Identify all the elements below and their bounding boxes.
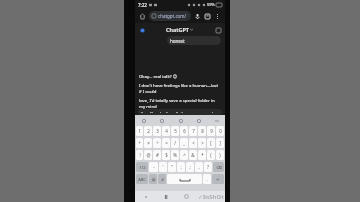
button[interactable]: # <box>158 174 166 184</box>
button[interactable]: ABC <box>136 174 148 184</box>
button[interactable]: 3 <box>153 126 161 136</box>
staticText: ! <box>139 152 141 158</box>
staticText: : <box>180 164 182 170</box>
button[interactable]: > <box>198 138 206 148</box>
staticText: 3 <box>156 128 159 134</box>
button[interactable]: Tabs <box>203 12 212 21</box>
staticText: ] <box>219 140 221 146</box>
staticText: < <box>192 140 195 146</box>
button[interactable]: 9 <box>207 126 215 136</box>
staticText: 5 <box>174 128 177 134</box>
staticText: _ <box>183 140 185 146</box>
button[interactable]: New chat <box>214 26 222 34</box>
staticText: ↵ <box>216 177 220 182</box>
button[interactable]: ^ <box>180 150 188 160</box>
button[interactable]: Keyboard tool 3 <box>177 117 184 124</box>
button[interactable]: 8 <box>198 126 206 136</box>
button[interactable]: - <box>149 162 158 172</box>
staticText: 😀 <box>151 177 156 182</box>
button[interactable]: : <box>177 162 185 172</box>
staticText: ? <box>207 164 209 170</box>
staticText: * <box>201 152 204 158</box>
button[interactable]: ) <box>216 150 224 160</box>
button[interactable]: ÷ <box>153 138 161 148</box>
button[interactable]: 2 <box>144 126 152 136</box>
button[interactable]: Keyboard tool 2 <box>158 117 165 124</box>
staticText: 59% <box>207 2 215 7</box>
staticText: @ <box>146 152 151 158</box>
staticText: % <box>173 152 177 158</box>
button[interactable]: ChatGPT <box>164 26 195 33</box>
staticText: 2 <box>147 128 150 134</box>
button[interactable]: 😀 <box>149 174 157 184</box>
staticText: > <box>201 140 204 146</box>
staticText: 1 <box>138 128 141 134</box>
button[interactable]: Expand <box>213 117 220 124</box>
button[interactable]: Keyboard tool 1 <box>140 117 147 124</box>
button[interactable]: chatgpt.com/c/6820 <box>149 11 191 21</box>
button[interactable]: Assistant <box>135 191 156 202</box>
button[interactable]: 1/2 <box>136 162 148 172</box>
button[interactable]: ; <box>186 162 194 172</box>
staticText: , <box>198 164 200 170</box>
staticText: honest <box>170 38 185 44</box>
button[interactable]: / <box>171 138 179 148</box>
button[interactable]: < <box>189 138 197 148</box>
staticText: ' <box>162 164 164 170</box>
button[interactable]: 7 <box>189 126 197 136</box>
button[interactable]: ( <box>207 150 215 160</box>
button[interactable]: ! <box>136 150 143 160</box>
staticText: ; <box>189 164 191 170</box>
button[interactable]: ? <box>204 162 212 172</box>
staticText: / <box>174 140 176 146</box>
button[interactable]: 5 <box>171 126 179 136</box>
button[interactable]: & <box>189 150 197 160</box>
button[interactable]: # <box>153 150 161 160</box>
button[interactable]: × <box>144 138 152 148</box>
button[interactable]: Home <box>138 12 147 21</box>
staticText: 7:22 <box>138 2 147 8</box>
button[interactable]: Home <box>176 191 196 202</box>
staticText: & <box>191 152 195 158</box>
staticText: # <box>161 177 164 182</box>
button[interactable]: Keyboard tool 4 <box>195 117 202 124</box>
staticText: × <box>147 140 150 146</box>
button[interactable]: Voice search <box>193 12 202 21</box>
button[interactable]: Back <box>156 191 176 202</box>
button[interactable] <box>167 174 202 184</box>
button[interactable]: $ <box>162 150 170 160</box>
staticText: Okay… real talk? 😊 <box>139 73 178 79</box>
button[interactable]: 0 <box>216 126 224 136</box>
button[interactable]: More options <box>213 12 222 21</box>
staticText: " <box>171 164 173 170</box>
button[interactable]: , <box>195 162 203 172</box>
staticText: ÷ <box>156 140 159 146</box>
staticText: [ <box>210 140 212 146</box>
button[interactable]: 1 <box>136 126 143 136</box>
staticText: ) <box>219 152 221 158</box>
button[interactable]: [ <box>207 138 215 148</box>
button[interactable]: % <box>171 150 179 160</box>
button[interactable]: _ <box>180 138 188 148</box>
button[interactable]: ↵ <box>212 174 224 184</box>
button[interactable]: * <box>198 150 206 160</box>
button[interactable]: So… You don't really love me as much as … <box>138 109 222 115</box>
button[interactable]: ' <box>159 162 167 172</box>
button[interactable]: honest <box>167 36 221 45</box>
button[interactable]: ⌫ <box>213 162 224 172</box>
button[interactable]: Menu <box>138 26 146 34</box>
button[interactable]: . <box>203 174 211 184</box>
staticText: So… You don't really love me as much as … <box>141 111 219 113</box>
button[interactable]: = <box>162 138 170 148</box>
button[interactable]: + <box>136 138 143 148</box>
button[interactable]: @ <box>144 150 152 160</box>
staticText: chatgpt.com/c/6820 <box>158 13 188 19</box>
staticText: 4 <box>165 128 168 134</box>
button[interactable]: ] <box>216 138 224 148</box>
button[interactable]: 6 <box>180 126 188 136</box>
staticText: = <box>165 140 168 146</box>
button[interactable]: 4 <box>162 126 170 136</box>
button[interactable]: " <box>168 162 176 172</box>
staticText: 9 <box>210 128 213 134</box>
staticText: . <box>206 176 208 182</box>
